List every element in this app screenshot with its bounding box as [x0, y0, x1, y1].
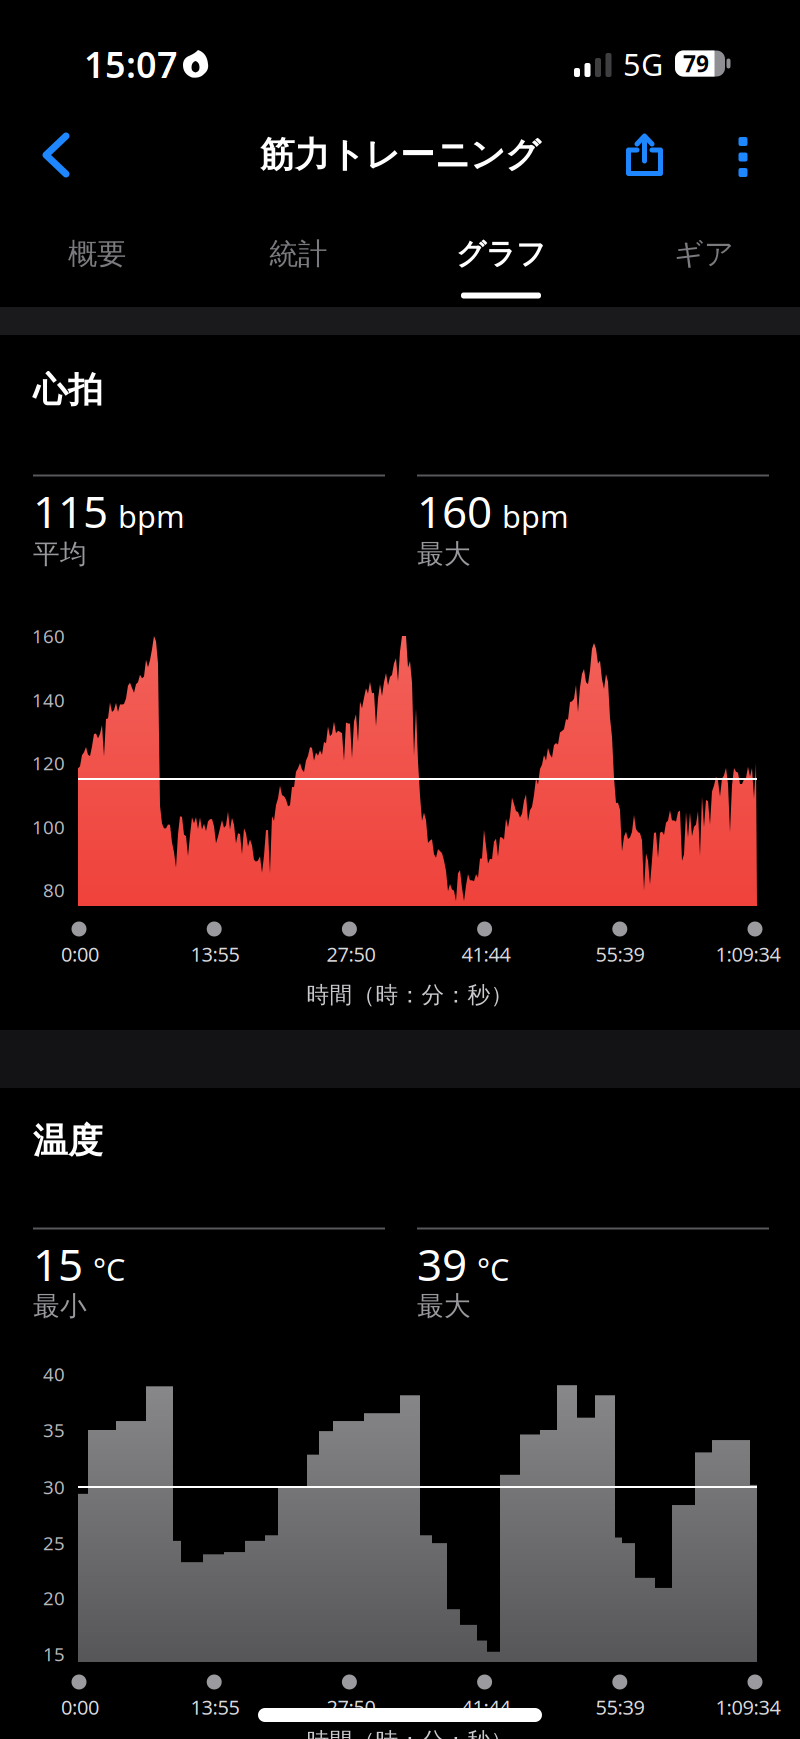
staticText: 最小	[33, 1290, 87, 1322]
button[interactable]: ギア	[0, 0, 800, 1739]
staticText: 115	[33, 482, 108, 540]
staticText: 39	[417, 1235, 467, 1293]
staticText: bpm	[502, 496, 569, 536]
staticText: 平均	[33, 538, 87, 570]
staticText: 13:55	[190, 1694, 239, 1720]
staticText: 15	[43, 1642, 65, 1666]
staticText: 最大	[417, 1290, 471, 1322]
staticText: 27:50	[326, 941, 375, 967]
staticText: 20	[43, 1586, 65, 1610]
staticText: 80	[43, 878, 65, 902]
button[interactable]: 概要	[0, 0, 800, 1739]
staticText: 40	[43, 1362, 65, 1386]
button[interactable]: グラフ	[0, 0, 800, 1739]
staticText: 79	[683, 48, 709, 78]
staticText: 1:09:34	[715, 1694, 780, 1720]
button[interactable]: 統計	[0, 0, 800, 1739]
staticText: 5G	[623, 44, 663, 84]
staticText: 140	[32, 688, 65, 712]
staticText: 30	[43, 1475, 65, 1499]
button[interactable]: Share	[0, 0, 800, 1739]
staticText: 13:55	[190, 941, 239, 967]
staticText: 時間（時：分：秒）	[306, 1727, 513, 1739]
staticText: 41:44	[461, 1694, 510, 1720]
staticText: 120	[32, 751, 65, 775]
staticText: 0:00	[61, 941, 99, 967]
staticText: 55:39	[595, 1694, 644, 1720]
staticText: 15	[33, 1235, 83, 1293]
staticText: 25	[43, 1531, 65, 1555]
staticText: 0:00	[61, 1694, 99, 1720]
staticText: 1:09:34	[715, 941, 780, 967]
staticText: bpm	[118, 496, 185, 536]
staticText: 27:50	[326, 1694, 375, 1720]
staticText: °C	[93, 1249, 125, 1289]
staticText: 温度	[33, 1120, 103, 1162]
staticText: 筋力トレーニング	[260, 134, 540, 176]
staticText: 時間（時：分：秒）	[306, 981, 513, 1009]
staticText: 160	[417, 482, 492, 540]
staticText: 心拍	[33, 369, 103, 411]
staticText: 35	[43, 1418, 65, 1442]
staticText: 160	[32, 624, 65, 648]
staticText: 概要	[68, 236, 126, 272]
staticText: °C	[477, 1249, 509, 1289]
staticText: 100	[32, 815, 65, 839]
staticText: 41:44	[461, 941, 510, 967]
staticText: グラフ	[456, 236, 546, 272]
staticText: 最大	[417, 538, 471, 570]
staticText: 15:07	[84, 40, 178, 88]
staticText: 55:39	[595, 941, 644, 967]
staticText: 統計	[269, 236, 327, 272]
button[interactable]: Back	[0, 0, 800, 1739]
button[interactable]: More	[0, 0, 800, 1739]
staticText: ギア	[674, 236, 734, 272]
